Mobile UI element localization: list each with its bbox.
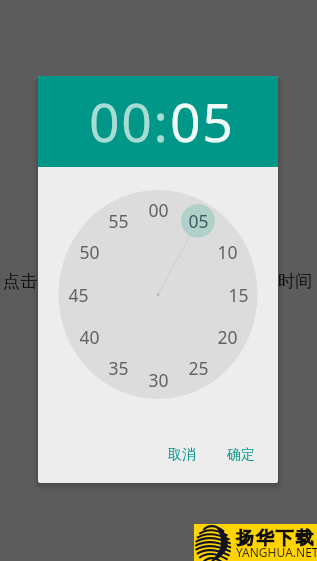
- button[interactable]: 15: [221, 283, 255, 307]
- staticText: YANGHUA.NET: [236, 544, 317, 560]
- staticText: 15: [228, 283, 249, 307]
- staticText: 45: [68, 283, 89, 307]
- staticText: 35: [108, 356, 129, 380]
- staticText: 取消: [168, 446, 196, 464]
- staticText: 00: [148, 198, 169, 222]
- staticText: 05: [188, 209, 209, 233]
- button[interactable]: 05: [170, 85, 235, 158]
- staticText: 30: [148, 368, 169, 392]
- button[interactable]: 25: [181, 356, 215, 380]
- button[interactable]: 30: [141, 368, 175, 392]
- staticText: 40: [79, 325, 100, 349]
- staticText: 10: [217, 240, 238, 264]
- button[interactable]: 取消: [161, 442, 203, 468]
- staticText: 点击下面按钮会弹出对话框让你选择时间: [3, 270, 313, 292]
- button[interactable]: 50: [72, 240, 106, 264]
- button[interactable]: 35: [101, 356, 135, 380]
- button[interactable]: 55: [101, 209, 135, 233]
- staticText: 扬华下载: [236, 527, 316, 550]
- button[interactable]: 00:: [89, 85, 170, 158]
- button[interactable]: 45: [61, 283, 95, 307]
- button[interactable]: 00: [141, 198, 175, 222]
- button[interactable]: 05: [181, 209, 215, 233]
- staticText: 20: [217, 325, 238, 349]
- button[interactable]: 40: [72, 325, 106, 349]
- button[interactable]: 10: [210, 240, 244, 264]
- staticText: 50: [79, 240, 100, 264]
- staticText: 55: [108, 209, 129, 233]
- button[interactable]: 20: [210, 325, 244, 349]
- staticText: 25: [188, 356, 209, 380]
- other: Watermark: [194, 524, 317, 561]
- staticText: 确定: [227, 446, 255, 464]
- button[interactable]: 确定: [220, 442, 262, 468]
